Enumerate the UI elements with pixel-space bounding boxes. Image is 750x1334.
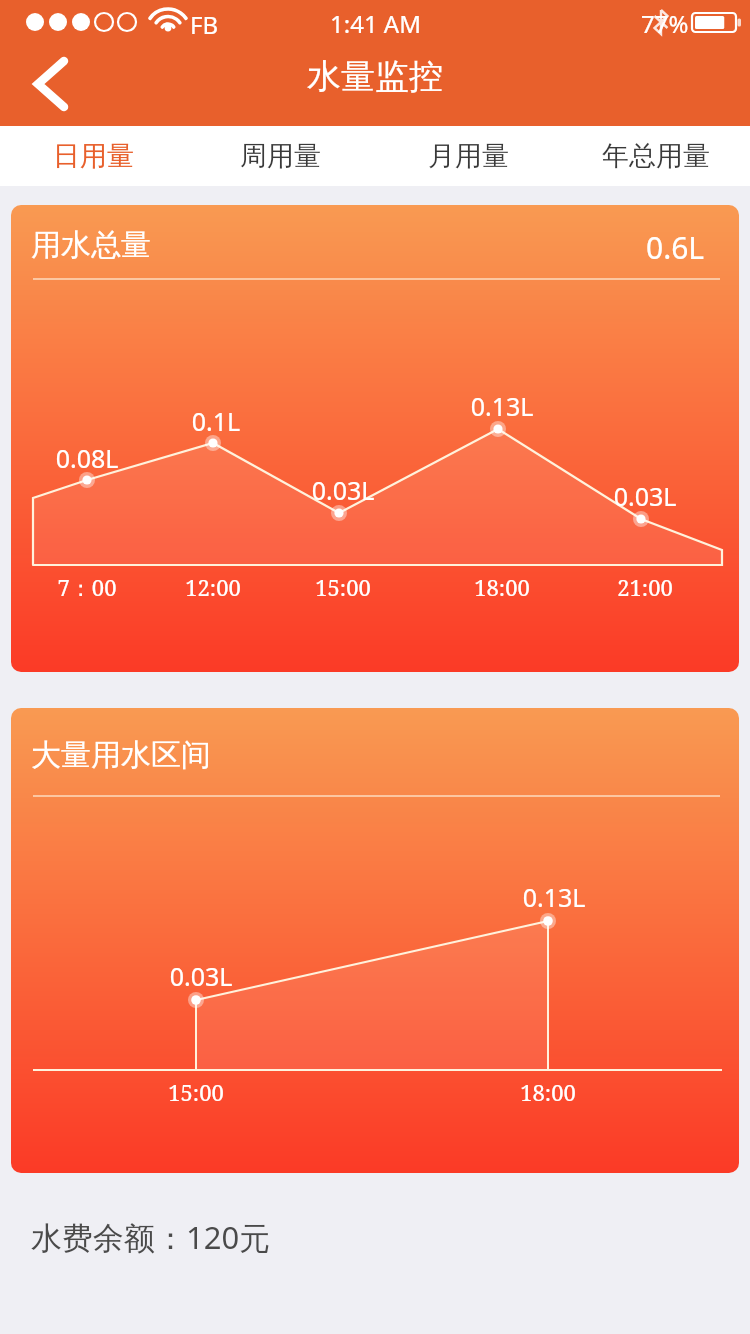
staticText: 12:00 [103,572,323,602]
staticText: 7：00 [0,572,197,602]
staticText: 月用量 [428,139,509,173]
staticText: 水费余额：120元 [31,1216,271,1258]
button[interactable] [11,205,739,672]
button[interactable]: 周用量 [187,126,374,186]
staticText: 周用量 [240,139,321,173]
staticText: 用水总量 [31,226,151,264]
staticText: 15:00 [233,572,453,602]
button[interactable]: 年总用量 [562,126,750,186]
staticText: 0.03L [91,959,311,993]
staticText: FB [190,8,219,41]
staticText: 0.6L [646,227,705,268]
button[interactable] [11,708,739,1173]
button[interactable]: 月用量 [374,126,562,186]
staticText: 15:00 [86,1077,306,1107]
staticText: 77% [641,7,689,40]
staticText: 日用量 [53,139,134,173]
staticText: 0.03L [535,479,750,513]
staticText: 年总用量 [602,139,710,173]
staticText: 0.03L [233,473,453,507]
staticText: 0.08L [0,441,197,475]
staticText: 0.13L [444,880,664,914]
button[interactable]: 返回 [14,48,100,122]
staticText: 大量用水区间 [31,736,211,774]
staticText: 21:00 [535,572,750,602]
staticText: 0.13L [392,389,612,423]
staticText: 水量监控 [307,55,443,98]
staticText: 0.1L [106,404,326,438]
staticText: 18:00 [392,572,612,602]
staticText: 1:41 AM [330,7,421,40]
button[interactable]: 日用量 [0,126,187,186]
staticText: 18:00 [438,1077,658,1107]
